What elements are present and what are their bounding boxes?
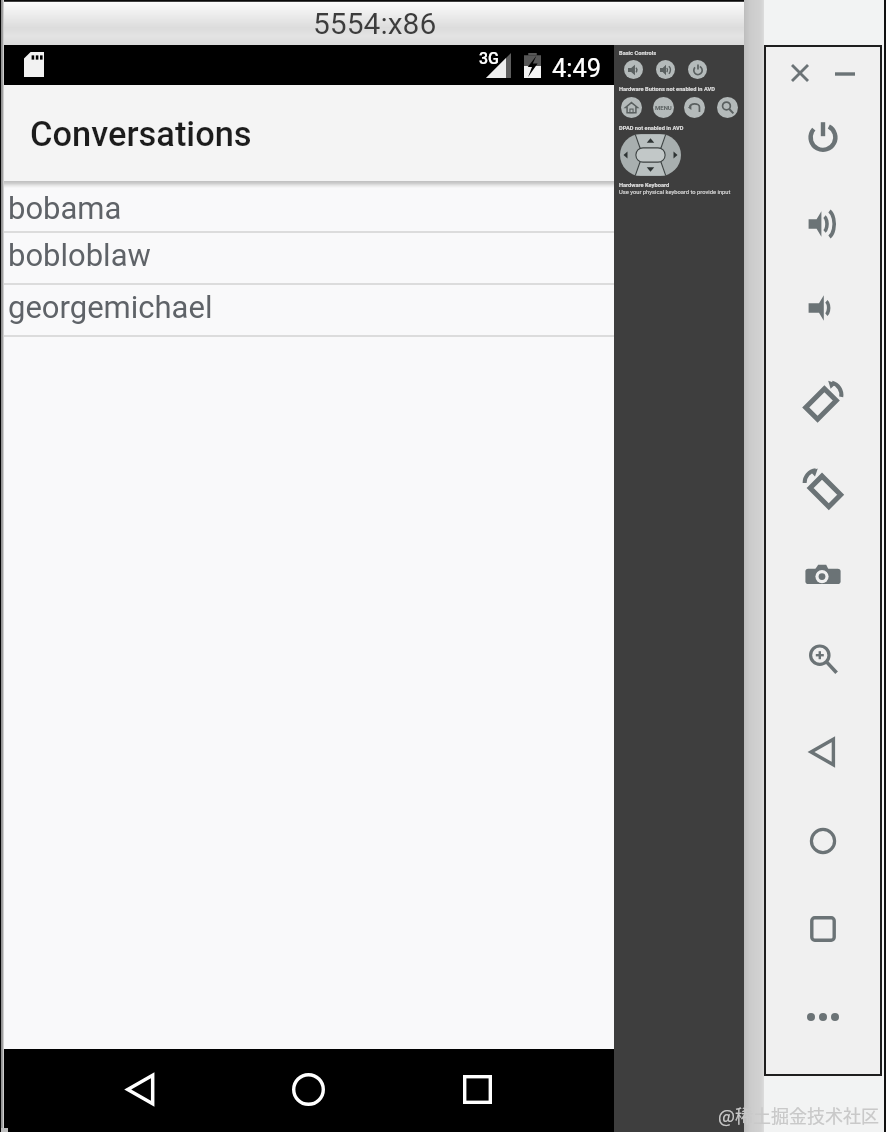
button[interactable]: D-Pad <box>620 134 681 176</box>
button[interactable]: Close <box>786 59 814 87</box>
staticText: bobama <box>8 190 122 226</box>
button[interactable]: Rotate right <box>798 375 848 425</box>
staticText: 3G <box>479 49 499 68</box>
button[interactable]: Back <box>108 1065 169 1114</box>
button[interactable]: Zoom in <box>798 635 848 685</box>
staticText: georgemichael <box>8 289 213 325</box>
button[interactable]: Minimize <box>831 60 859 88</box>
button[interactable]: Volume up <box>656 60 675 79</box>
button[interactable]: Search <box>717 97 738 118</box>
button[interactable]: Back <box>798 727 848 777</box>
button[interactable]: Volume down <box>624 60 643 79</box>
button[interactable]: bobama <box>0 188 614 233</box>
button[interactable]: Volume up <box>798 199 848 249</box>
button[interactable]: georgemichael <box>0 285 614 337</box>
staticText: MENU <box>655 104 672 111</box>
button[interactable]: Volume down <box>798 283 848 333</box>
button[interactable]: Menu <box>653 97 674 118</box>
staticText: bobloblaw <box>8 237 151 273</box>
button[interactable]: Overview <box>798 904 848 954</box>
button[interactable]: Take screenshot <box>798 551 848 601</box>
staticText: Use your physical keyboard to provide in… <box>619 189 731 196</box>
button[interactable]: Back <box>684 97 705 118</box>
staticText: Hardware Keyboard <box>619 182 670 189</box>
button[interactable]: Rotate left <box>798 462 848 512</box>
button[interactable]: bobloblaw <box>0 233 614 285</box>
staticText: Basic Controls <box>619 50 657 57</box>
button[interactable]: Home <box>621 97 642 118</box>
button[interactable]: Power <box>798 112 848 162</box>
staticText: DPAD not enabled in AVD <box>619 125 684 132</box>
button[interactable]: Recents <box>447 1065 508 1114</box>
button[interactable]: More options <box>798 992 848 1042</box>
button[interactable]: Home <box>798 816 848 866</box>
button[interactable]: Home <box>278 1065 339 1114</box>
staticText: Conversations <box>30 114 252 154</box>
button[interactable]: Power <box>688 60 707 79</box>
staticText: 4:49 <box>552 53 602 83</box>
staticText: Hardware Buttons not enabled in AVD <box>619 86 715 93</box>
staticText: @稀土掘金技术社区 <box>718 1102 880 1128</box>
staticText: 5554:x86 <box>313 6 437 41</box>
